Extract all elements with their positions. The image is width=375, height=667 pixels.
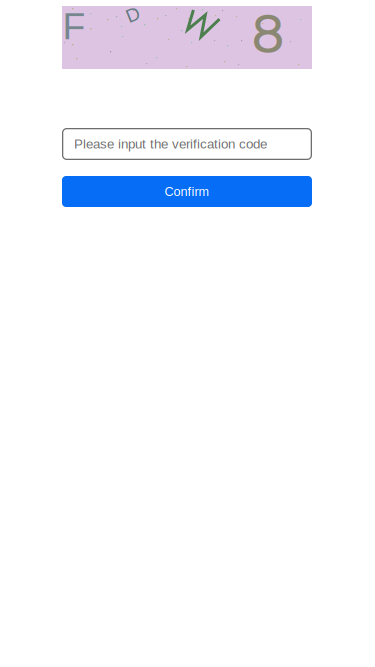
staticText: Confirm [164,184,209,199]
button[interactable]: Please input the verification code [62,128,312,160]
staticText: F [62,5,85,47]
staticText: Please input the verification code [74,137,267,151]
staticText: D [126,4,139,25]
button[interactable]: Confirm [62,176,312,207]
staticText: 8 [251,2,285,66]
button[interactable]: Refresh verification code [62,6,312,69]
